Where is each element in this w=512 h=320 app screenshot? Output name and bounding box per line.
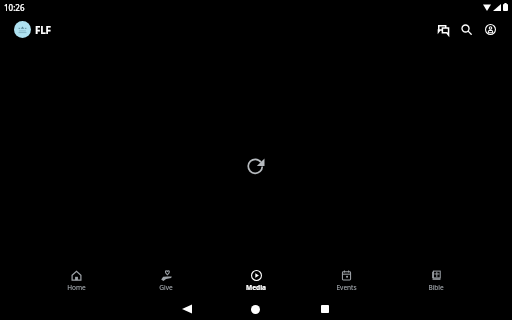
button[interactable]: Home	[31, 270, 121, 302]
button[interactable]: Account	[479, 18, 501, 40]
staticText: 10:26	[4, 2, 25, 13]
staticText: Bible	[428, 283, 444, 292]
button[interactable]: Messages	[432, 18, 454, 40]
button[interactable]: Events	[301, 270, 391, 302]
button[interactable]: Media	[211, 270, 301, 302]
staticText: FLF	[35, 23, 51, 37]
button[interactable]: FLF	[14, 21, 51, 38]
button[interactable]: Recents	[290, 298, 359, 320]
staticText: Events	[336, 283, 357, 292]
button[interactable]: Search	[455, 18, 477, 40]
button[interactable]: Back	[152, 298, 221, 320]
button[interactable]: Give	[121, 270, 211, 302]
staticText: Media	[246, 283, 266, 292]
button[interactable]: Home	[221, 298, 290, 320]
staticText: Give	[159, 283, 173, 292]
button[interactable]: Bible	[391, 270, 481, 302]
staticText: Home	[67, 283, 86, 292]
